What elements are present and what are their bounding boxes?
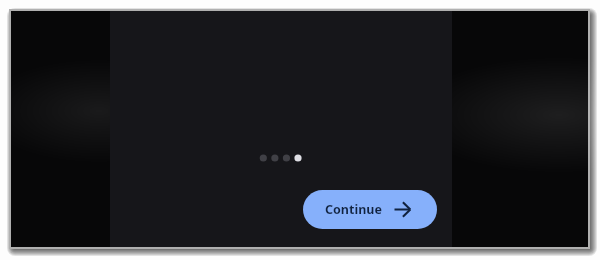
- button[interactable]: Continue: [303, 190, 437, 229]
- button[interactable]: Page 4 of 4: [257, 141, 303, 175]
- staticText: Continue: [325, 201, 382, 218]
